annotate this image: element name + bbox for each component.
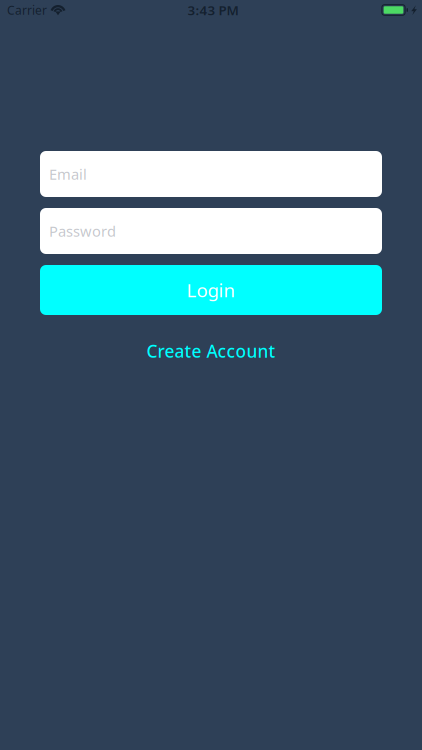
button[interactable]: Login [40,265,382,315]
staticText: Carrier [7,2,47,18]
button[interactable]: Email [40,151,382,197]
button[interactable]: Create Account [40,339,382,363]
staticText: Login [186,278,235,302]
staticText: Create Account [146,339,275,362]
staticText: 3:43 PM [187,1,238,19]
staticText: Email [49,164,87,184]
staticText: Password [49,221,116,241]
button[interactable]: Password [40,208,382,254]
